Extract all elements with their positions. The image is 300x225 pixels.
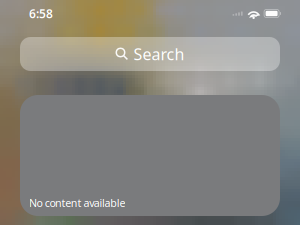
button[interactable]: Search	[20, 37, 280, 71]
staticText: No content available	[29, 196, 125, 210]
staticText: 6:58	[29, 5, 53, 21]
staticText: Search	[133, 43, 184, 65]
